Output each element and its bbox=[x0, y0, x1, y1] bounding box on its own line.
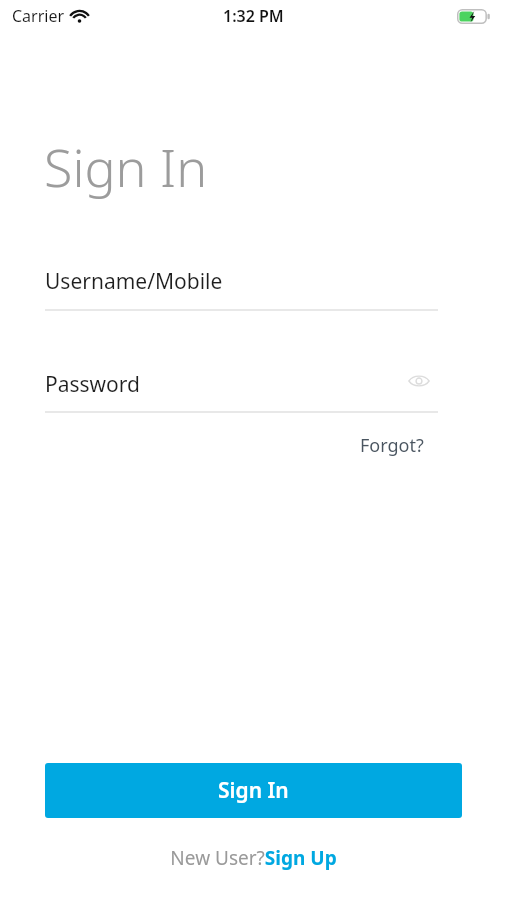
button[interactable]: New User?Sign Up bbox=[170, 845, 337, 871]
staticText: Sign In bbox=[218, 776, 289, 805]
button[interactable]: Password bbox=[45, 362, 438, 412]
button[interactable]: Forgot? bbox=[360, 428, 424, 462]
staticText: Carrier bbox=[12, 5, 65, 27]
staticText: New User?Sign Up bbox=[170, 845, 337, 871]
staticText: Password bbox=[45, 370, 140, 399]
staticText: Forgot? bbox=[360, 433, 424, 458]
staticText: 1:32 PM bbox=[223, 5, 284, 27]
staticText: Username/Mobile bbox=[45, 267, 223, 296]
button[interactable]: Sign In bbox=[45, 763, 462, 818]
button[interactable]: Show password bbox=[402, 365, 436, 397]
staticText: Sign In bbox=[44, 131, 208, 202]
